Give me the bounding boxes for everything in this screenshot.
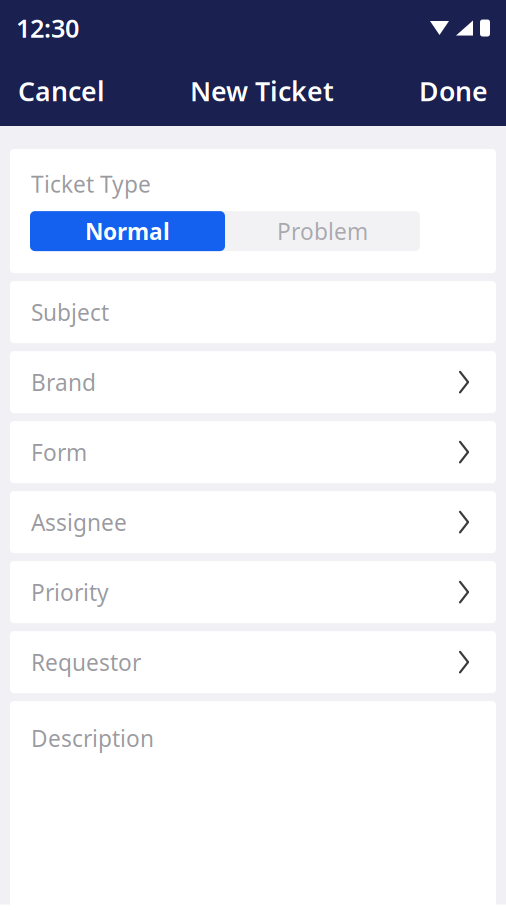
button[interactable]: Subject	[10, 281, 496, 343]
button[interactable]: Description	[10, 701, 496, 909]
staticText: Subject	[31, 297, 109, 327]
staticText: Requestor	[31, 647, 141, 677]
button[interactable]: Form	[10, 421, 496, 483]
staticText: Normal	[85, 216, 170, 246]
button[interactable]: Normal	[30, 211, 225, 251]
staticText: 12:30	[16, 11, 79, 45]
staticText: Brand	[31, 367, 96, 397]
button[interactable]: Problem	[225, 211, 420, 251]
staticText: Problem	[277, 216, 368, 246]
staticText: Cancel	[18, 73, 105, 109]
staticText: New Ticket	[190, 73, 334, 109]
staticText: Form	[31, 437, 87, 467]
button[interactable]: Cancel	[0, 61, 123, 121]
button[interactable]: Done	[401, 61, 506, 121]
staticText: Ticket Type	[31, 169, 151, 199]
staticText: Description	[31, 723, 154, 753]
staticText: Done	[419, 73, 488, 109]
staticText: Assignee	[31, 507, 127, 537]
button[interactable]: Priority	[10, 561, 496, 623]
button[interactable]: Assignee	[10, 491, 496, 553]
staticText: Priority	[31, 577, 109, 607]
button[interactable]: Requestor	[10, 631, 496, 693]
button[interactable]: Brand	[10, 351, 496, 413]
